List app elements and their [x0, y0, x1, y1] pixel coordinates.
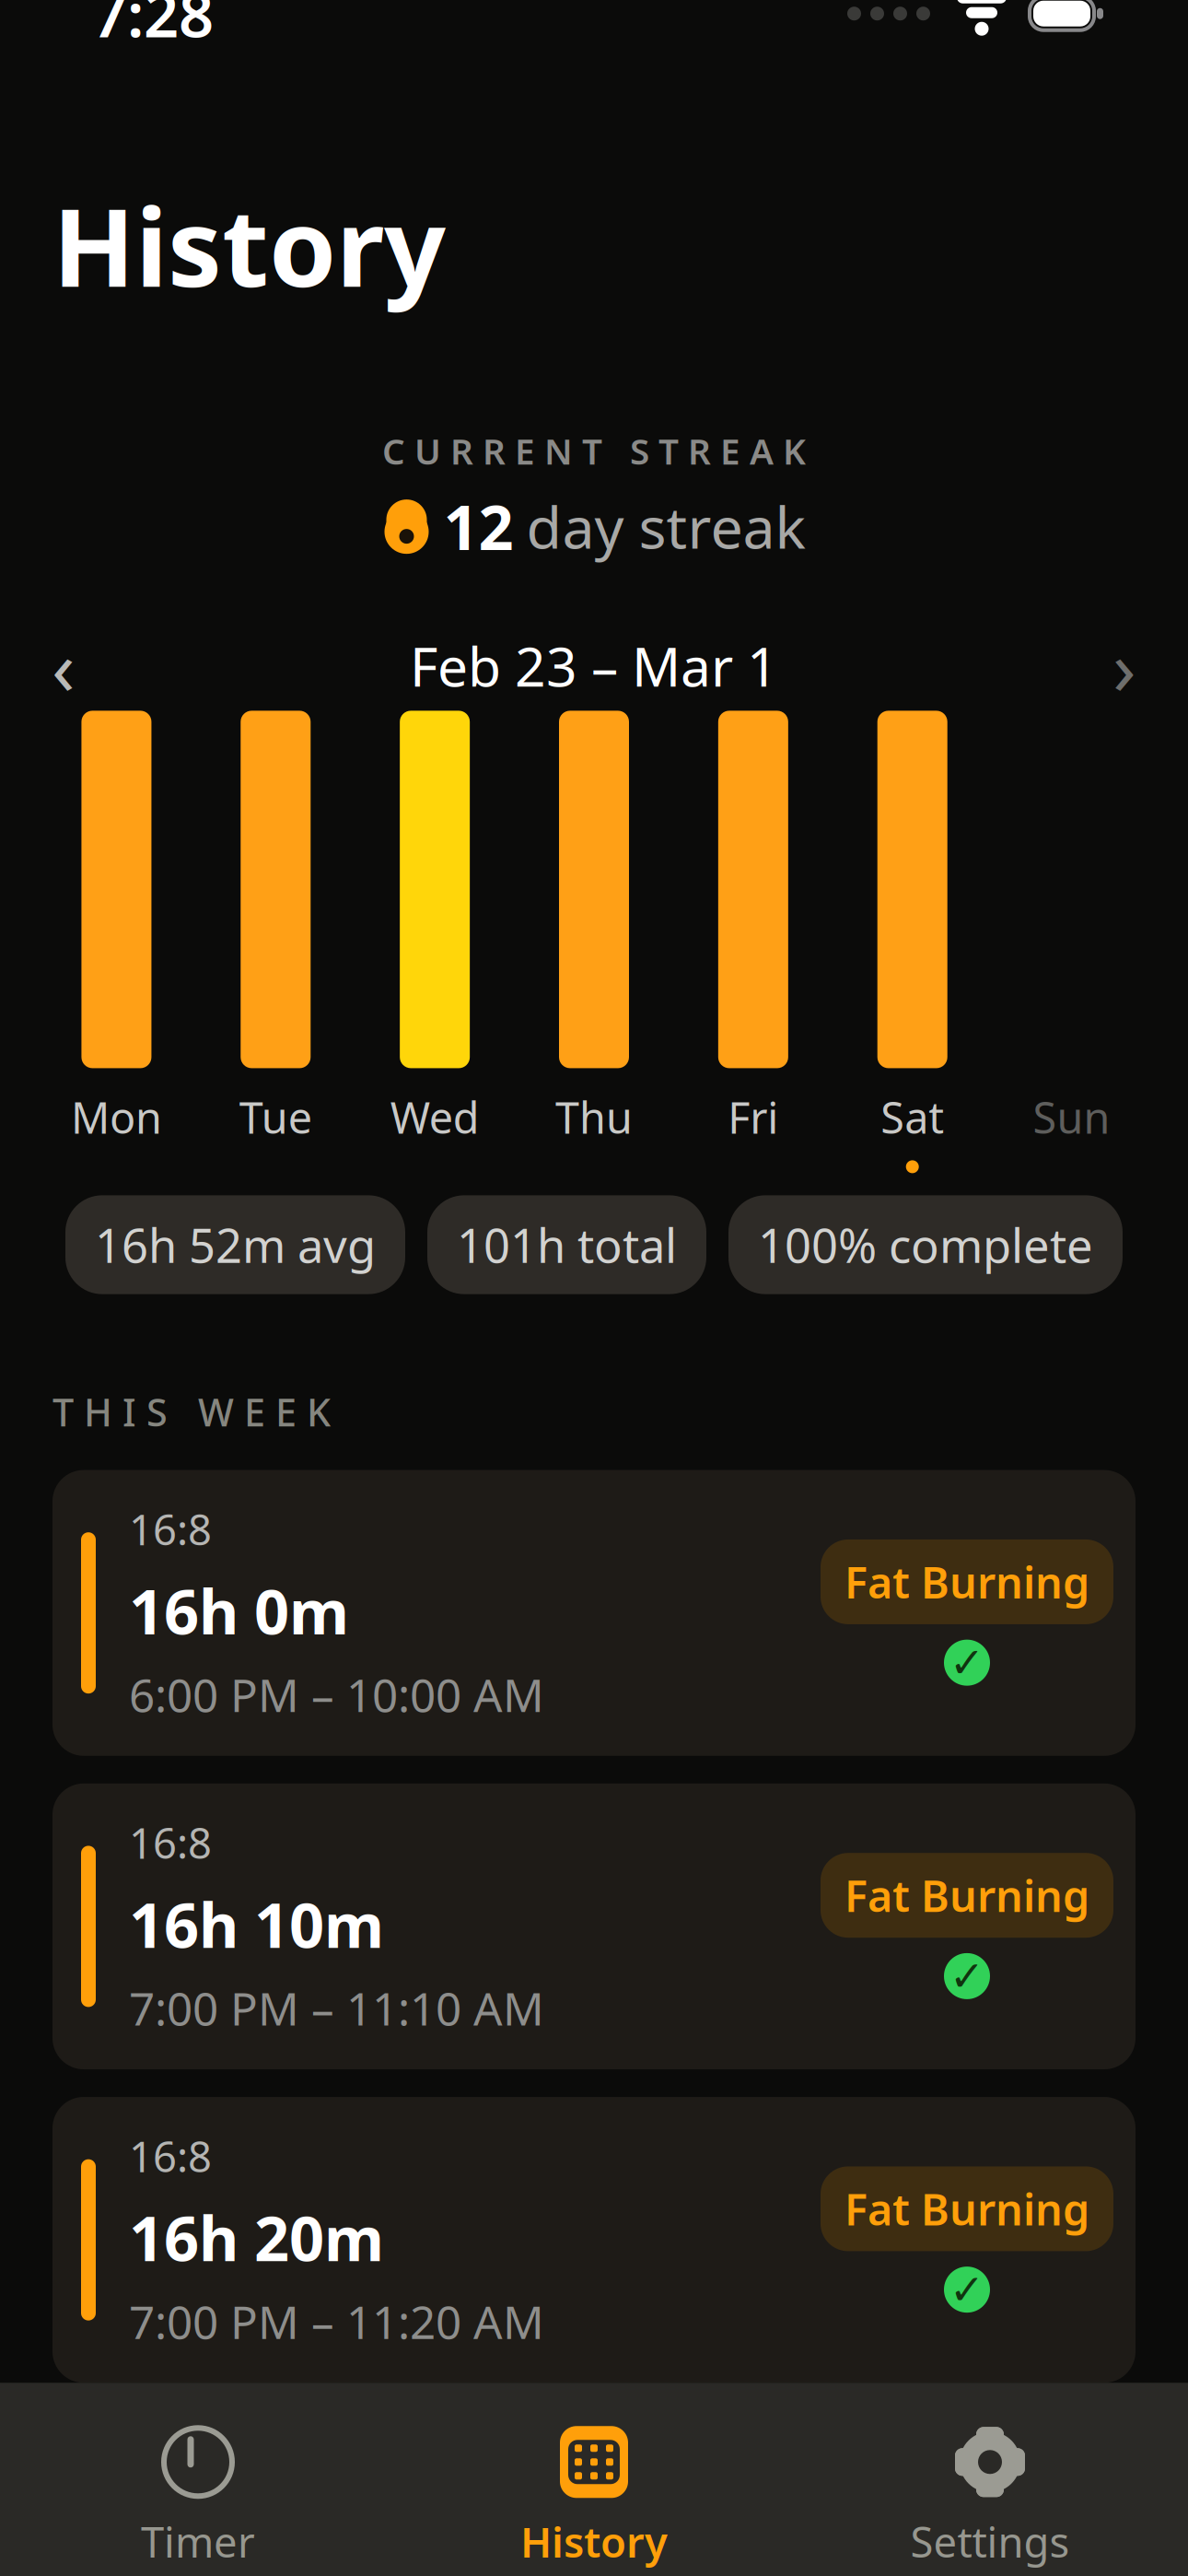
staticText: 16h 0m	[129, 1570, 349, 1651]
staticText: 7:00 PM – 11:20 AM	[129, 2291, 544, 2351]
staticText: 12	[443, 485, 513, 567]
staticText: Sun	[1033, 1088, 1110, 1146]
staticText: 16:8	[129, 1501, 212, 1557]
button[interactable]: Settings	[792, 2414, 1188, 2576]
staticText: Thu	[555, 1088, 633, 1146]
staticText: ‹	[52, 615, 76, 716]
button[interactable]: History	[396, 2414, 792, 2576]
staticText: Fri	[728, 1088, 779, 1146]
staticText: History	[52, 173, 446, 316]
staticText: Settings	[910, 2514, 1070, 2569]
staticText: 6:00 PM – 10:00 AM	[129, 1664, 544, 1725]
staticText: Feb 23 – Mar 1	[410, 630, 778, 701]
staticText: day streak	[526, 488, 805, 564]
staticText: Fat Burning	[844, 1553, 1089, 1610]
staticText: T H I S W E E K	[52, 1386, 331, 1437]
staticText: C U R R E N T S T R E A K	[382, 427, 806, 474]
staticText: 7:28	[92, 0, 214, 54]
staticText: 16h 52m avg	[95, 1214, 376, 1276]
staticText: ✓	[949, 1639, 984, 1686]
staticText: ✓	[949, 2266, 984, 2313]
staticText: Fat Burning	[844, 2180, 1089, 2237]
staticText: 16:8	[129, 1815, 212, 1870]
staticText: 100% complete	[758, 1214, 1093, 1276]
staticText: Fat Burning	[844, 1867, 1089, 1924]
staticText: 16:8	[129, 2128, 212, 2184]
staticText: Tue	[239, 1088, 312, 1146]
staticText: 101h total	[457, 1214, 677, 1276]
staticText: History	[520, 2514, 668, 2569]
staticText: ›	[1112, 615, 1136, 716]
staticText: 7:00 PM – 11:10 AM	[129, 1978, 544, 2038]
button[interactable]: Previous week	[22, 624, 105, 707]
button[interactable]: Next week	[1083, 624, 1166, 707]
staticText: Timer	[141, 2514, 255, 2569]
staticText: 16h 10m	[129, 1883, 384, 1965]
staticText: Sat	[881, 1088, 944, 1146]
button[interactable]: 16:8	[52, 2097, 1136, 2383]
staticText: 16h 20m	[129, 2197, 384, 2278]
button[interactable]: Timer	[0, 2414, 396, 2576]
button[interactable]: 16:8	[52, 1470, 1136, 1756]
staticText: Wed	[390, 1088, 479, 1146]
staticText: Mon	[71, 1088, 162, 1146]
button[interactable]: 16:8	[52, 1783, 1136, 2069]
staticText: ✓	[949, 1952, 984, 2000]
